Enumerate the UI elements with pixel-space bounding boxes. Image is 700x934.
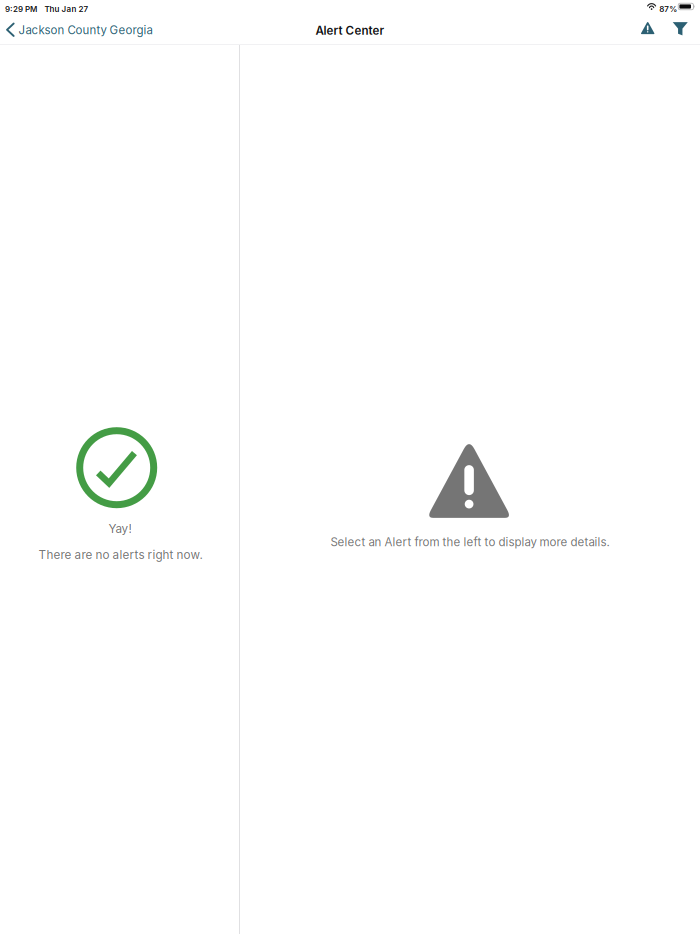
button[interactable]: Alerts (633, 17, 662, 44)
button[interactable]: Jackson County Georgia (0, 17, 158, 44)
staticText: Alert Center (315, 23, 384, 37)
staticText: 9:29 PM (5, 4, 37, 14)
staticText: Select an Alert from the left to display… (330, 535, 609, 549)
staticText: Jackson County Georgia (18, 23, 152, 37)
staticText: Yay! (108, 522, 131, 536)
staticText: Thu Jan 27 (45, 4, 89, 14)
button[interactable]: Filter (666, 17, 695, 44)
staticText: 87% (659, 4, 677, 14)
staticText: There are no alerts right now. (38, 548, 202, 562)
